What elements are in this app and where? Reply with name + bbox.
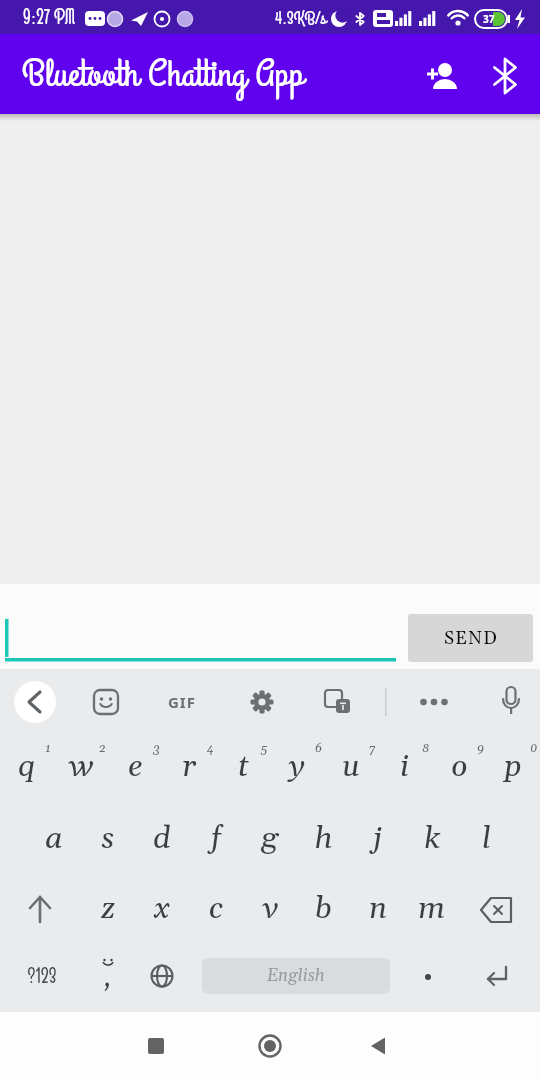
button[interactable]: [356, 1022, 404, 1070]
button[interactable]: [315, 680, 359, 724]
staticText: q: [18, 747, 36, 786]
staticText: r: [182, 747, 197, 786]
button[interactable]: [469, 879, 525, 941]
staticText: 9: [477, 741, 484, 756]
staticText: 0: [530, 741, 538, 756]
staticText: SEND: [444, 627, 498, 650]
staticText: u: [342, 747, 360, 786]
staticText: x: [154, 889, 170, 928]
button[interactable]: [138, 947, 186, 1005]
staticText: ?123: [27, 963, 57, 990]
button[interactable]: [240, 680, 284, 724]
button[interactable]: [412, 680, 456, 724]
staticText: k: [424, 819, 441, 858]
staticText: 6: [315, 741, 322, 756]
staticText: y: [288, 747, 306, 786]
button[interactable]: [489, 680, 533, 724]
button[interactable]: [481, 48, 529, 104]
staticText: n: [369, 889, 388, 928]
button[interactable]: [412, 47, 468, 103]
button[interactable]: [406, 947, 450, 1005]
staticText: c: [209, 889, 224, 928]
staticText: Bluetooth Chatting App: [22, 48, 304, 101]
staticText: 5: [261, 741, 268, 756]
staticText: ,: [104, 961, 112, 995]
button[interactable]: [160, 680, 204, 724]
staticText: v: [262, 889, 279, 928]
button[interactable]: SEND: [408, 614, 533, 662]
staticText: a: [45, 819, 63, 858]
staticText: b: [315, 889, 333, 928]
staticText: f: [211, 819, 222, 858]
button[interactable]: [13, 680, 57, 724]
staticText: 4: [207, 741, 214, 756]
button[interactable]: [469, 947, 525, 1005]
staticText: o: [451, 747, 468, 786]
staticText: i: [400, 747, 410, 786]
staticText: 8: [422, 741, 430, 756]
staticText: 37: [483, 12, 495, 26]
button[interactable]: [84, 680, 128, 724]
button[interactable]: [14, 879, 66, 941]
staticText: w: [68, 747, 94, 786]
staticText: t: [238, 747, 249, 786]
staticText: m: [418, 889, 446, 928]
button[interactable]: [14, 947, 70, 1005]
staticText: j: [373, 819, 383, 858]
button[interactable]: [132, 1022, 180, 1070]
staticText: 9:27 PM: [23, 5, 76, 31]
staticText: GIF: [168, 692, 196, 712]
staticText: l: [482, 819, 491, 858]
staticText: 7: [369, 741, 375, 756]
staticText: p: [504, 747, 522, 786]
staticText: 4.3KB/s: [275, 7, 327, 31]
staticText: English: [267, 965, 325, 987]
staticText: 2: [99, 741, 106, 756]
staticText: h: [315, 819, 333, 858]
button[interactable]: [5, 605, 397, 665]
staticText: s: [101, 819, 115, 858]
button[interactable]: [246, 1022, 294, 1070]
staticText: d: [153, 819, 171, 858]
staticText: 1: [45, 741, 51, 756]
staticText: g: [261, 819, 279, 858]
button[interactable]: English: [202, 958, 390, 994]
staticText: 3: [153, 741, 160, 756]
staticText: z: [101, 889, 115, 928]
staticText: e: [128, 747, 143, 786]
